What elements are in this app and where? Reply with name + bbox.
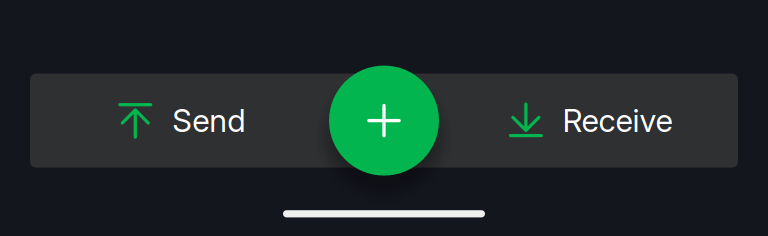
button[interactable]: Send [30, 74, 329, 168]
staticText: Receive [562, 102, 672, 139]
button[interactable]: New transaction [329, 66, 439, 176]
button[interactable]: Receive [439, 74, 738, 168]
staticText: Send [172, 102, 245, 139]
